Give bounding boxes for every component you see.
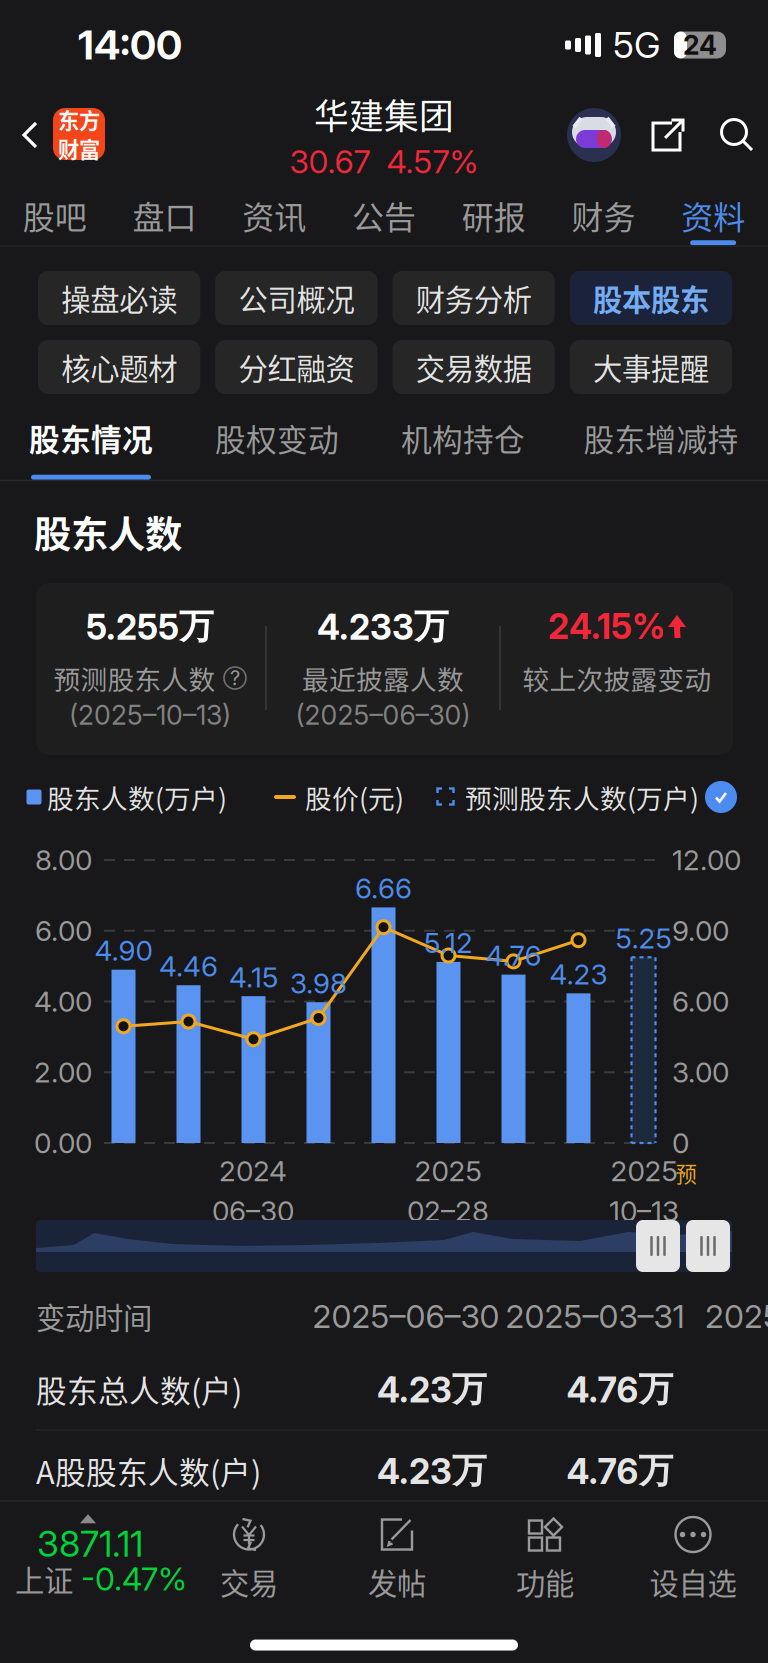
- staticText: 变动时间: [36, 1295, 152, 1337]
- staticText: 02–28: [407, 1194, 489, 1228]
- staticText: 3.98: [290, 966, 347, 1000]
- button[interactable]: 交易数据: [392, 340, 555, 394]
- staticText: 股本股东: [593, 277, 709, 319]
- staticText: 功能: [516, 1560, 574, 1603]
- staticText: 4.15: [229, 960, 278, 994]
- button[interactable]: 股权变动: [187, 400, 367, 480]
- staticText: 预: [675, 1158, 696, 1188]
- staticText: 操盘必读: [61, 277, 177, 319]
- staticText: 24: [683, 29, 717, 61]
- staticText: (2025–10–13): [69, 699, 231, 731]
- staticText: 设自选: [649, 1560, 736, 1603]
- staticText: 8.00: [35, 843, 92, 877]
- staticText: 东方: [58, 104, 100, 135]
- staticText: 24.15%: [548, 605, 665, 647]
- staticText: ?: [230, 666, 240, 690]
- staticText: 4.57%: [386, 142, 478, 181]
- staticText: 5.12: [424, 926, 473, 960]
- staticText: 发帖: [368, 1560, 426, 1603]
- button[interactable]: AI 助手: [567, 108, 621, 162]
- staticText: A股股东人数(户): [36, 1448, 261, 1493]
- staticText: 预测股东人数(万户): [465, 778, 699, 816]
- button[interactable]: 交易: [179, 1513, 319, 1605]
- staticText: 2025–06–30: [312, 1297, 499, 1336]
- staticText: 2025: [414, 1154, 481, 1188]
- staticText: 4.23万: [377, 1449, 487, 1493]
- staticText: 2025: [610, 1154, 677, 1188]
- staticText: 5G: [613, 23, 660, 67]
- staticText: 10–13: [609, 1194, 679, 1228]
- staticText: 交易数据: [416, 346, 532, 388]
- button[interactable]: 盘口: [110, 179, 219, 245]
- staticText: 股价(元): [305, 778, 404, 816]
- button[interactable]: 分红融资: [215, 340, 377, 394]
- staticText: 5.255万: [86, 605, 214, 648]
- button[interactable]: 股东情况: [1, 400, 181, 480]
- staticText: 9.00: [672, 914, 729, 948]
- staticText: 0.00: [34, 1126, 92, 1160]
- button[interactable]: 3871.11: [0, 1502, 200, 1612]
- staticText: 预测股东人数: [53, 659, 215, 697]
- button[interactable]: 设自选: [623, 1513, 763, 1605]
- button[interactable]: 大事提醒: [570, 340, 732, 394]
- button[interactable]: 分享: [641, 108, 695, 162]
- staticText: 4.23万: [377, 1367, 487, 1411]
- button[interactable]: 财务: [549, 179, 658, 245]
- staticText: 盘口: [133, 192, 197, 238]
- staticText: 公告: [352, 192, 416, 238]
- button[interactable]: 公告: [329, 179, 439, 245]
- staticText: 6.66: [355, 871, 412, 905]
- button[interactable]: 核心题材: [38, 340, 200, 394]
- staticText: 4.90: [94, 934, 152, 968]
- button[interactable]: 东方财富: [53, 108, 105, 160]
- staticText: 股吧: [23, 192, 87, 238]
- staticText: 资讯: [242, 192, 306, 238]
- staticText: 06–30: [212, 1194, 294, 1228]
- button[interactable]: 资讯: [219, 179, 329, 245]
- staticText: 3.00: [672, 1055, 729, 1089]
- staticText: 2.00: [34, 1055, 92, 1089]
- staticText: 股东情况: [29, 416, 153, 460]
- button[interactable]: 股东增减持: [571, 400, 751, 480]
- button[interactable]: 发帖: [327, 1513, 467, 1605]
- button[interactable]: 公司概况: [215, 271, 377, 325]
- staticText: 14:00: [78, 21, 182, 69]
- button[interactable]: 搜索: [710, 108, 764, 162]
- staticText: 股东人数(万户): [47, 778, 227, 816]
- staticText: 股权变动: [215, 416, 339, 460]
- staticText: 股东增减持: [583, 416, 738, 460]
- staticText: 机构持仓: [401, 416, 525, 460]
- staticText: 最近披露人数: [302, 659, 464, 697]
- staticText: 4.76: [485, 939, 541, 973]
- staticText: 财务: [571, 192, 635, 238]
- staticText: 较上次披露变动: [522, 659, 711, 697]
- button[interactable]: 研报: [439, 179, 549, 245]
- staticText: 6.00: [672, 985, 729, 1018]
- staticText: 财富: [58, 133, 100, 164]
- staticText: 财务分析: [416, 277, 532, 319]
- button[interactable]: 股本股东: [570, 271, 732, 325]
- staticText: 6.00: [35, 914, 92, 948]
- staticText: 股东人数: [34, 505, 182, 559]
- staticText: -0.47%: [81, 1559, 187, 1598]
- staticText: 交易: [220, 1560, 278, 1603]
- staticText: 5.25: [615, 921, 671, 955]
- staticText: 2024: [219, 1154, 287, 1188]
- button[interactable]: 股吧: [0, 179, 110, 245]
- button[interactable]: 返回: [5, 105, 55, 165]
- staticText: 2025–: [705, 1297, 768, 1336]
- staticText: 4.76万: [566, 1367, 673, 1411]
- button[interactable]: 预测开关: [703, 779, 739, 815]
- staticText: 资料: [681, 192, 745, 238]
- staticText: 上证: [15, 1557, 73, 1600]
- staticText: 核心题材: [61, 346, 177, 388]
- staticText: 华建集团: [314, 89, 454, 139]
- button[interactable]: 资料: [658, 179, 768, 245]
- button[interactable]: 功能: [475, 1513, 615, 1605]
- button[interactable]: 机构持仓: [373, 400, 553, 480]
- staticText: 大事提醒: [593, 346, 709, 388]
- button[interactable]: 财务分析: [392, 271, 555, 325]
- staticText: 4.23: [549, 957, 607, 991]
- button[interactable]: 操盘必读: [38, 271, 200, 325]
- staticText: 2025–03–31: [505, 1297, 684, 1336]
